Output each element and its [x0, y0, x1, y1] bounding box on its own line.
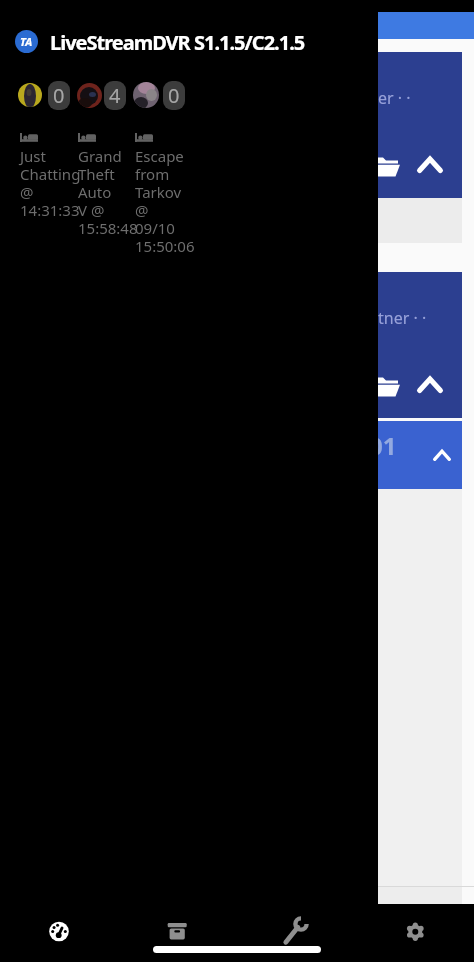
staticText: 4 — [109, 82, 121, 109]
staticText: TA — [20, 34, 33, 49]
staticText: Escape from Tarkov @ 09/10 15:50:06 — [135, 146, 195, 257]
staticText: tner · · — [378, 307, 427, 329]
staticText: Just Chatting @ 14:31:33 — [20, 146, 81, 221]
staticText: 0 — [53, 82, 65, 109]
staticText: Grand Theft Auto V @ 15:58:48 — [78, 146, 138, 239]
staticText: 01 — [378, 429, 397, 462]
staticText: er · · — [378, 87, 411, 109]
staticText: LiveStreamDVR S1.1.5/C2.1.5 — [50, 29, 305, 56]
staticText: 0 — [168, 82, 180, 109]
